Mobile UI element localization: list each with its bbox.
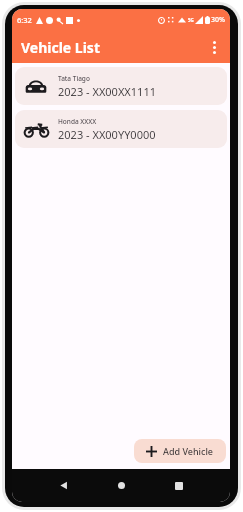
button[interactable]: Back	[34, 469, 92, 502]
staticText: Honda XXXX	[58, 117, 97, 126]
staticText: 6:32	[17, 15, 32, 25]
staticText: 2023 - XX00XX1111	[58, 84, 156, 99]
button[interactable]: Home	[92, 469, 150, 502]
button[interactable]: Honda XXXX	[15, 110, 227, 148]
button[interactable]: Add Vehicle	[134, 439, 226, 463]
staticText: Tata Tiago	[58, 74, 90, 83]
button[interactable]: Recent apps	[150, 469, 208, 502]
staticText: Vehicle List	[21, 38, 100, 57]
staticText: 30%	[211, 15, 225, 25]
button[interactable]: More options	[201, 34, 227, 60]
staticText: 2023 - XX00YY0000	[58, 127, 156, 142]
button[interactable]: Tata Tiago	[15, 67, 227, 105]
staticText: 5G	[188, 17, 194, 23]
staticText: Add Vehicle	[163, 445, 214, 457]
